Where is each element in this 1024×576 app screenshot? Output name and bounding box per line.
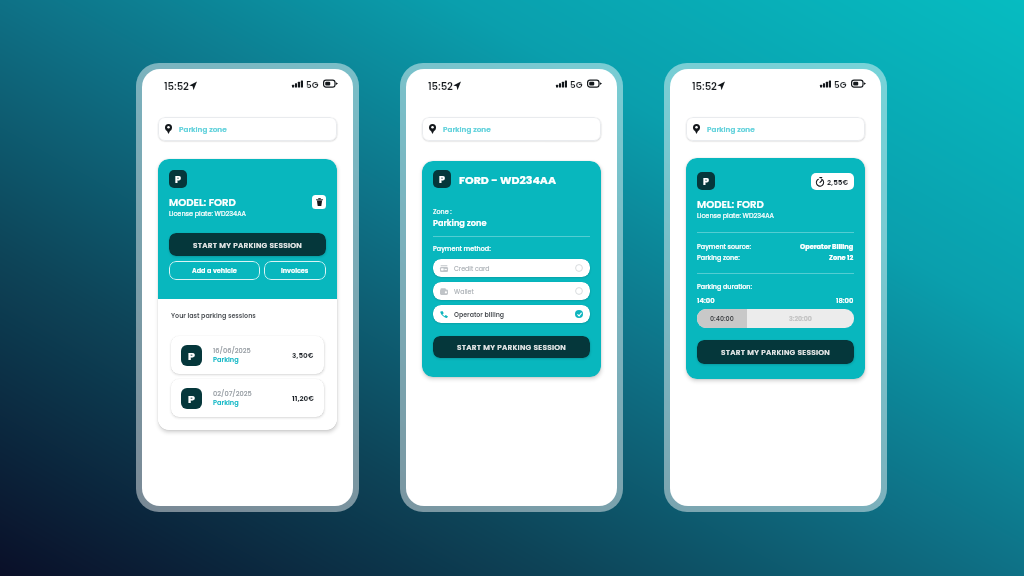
staticText: 14:00 [697,296,715,306]
button[interactable]: P [171,336,324,374]
staticText: Payment source: [697,242,752,251]
staticText: Zone : [433,207,452,216]
button[interactable]: START MY PARKING SESSION [169,233,326,256]
button[interactable]: Add a vehicle [169,261,260,280]
staticText: P [175,173,181,186]
staticText: 02/07/2025 [213,389,252,398]
staticText: 15:52 [692,79,717,93]
staticText: Parking zone: [697,253,740,262]
button[interactable]: Operator billing [433,305,590,323]
staticText: MODEL: FORD [697,197,764,211]
button[interactable]: Wallet [433,282,590,300]
button[interactable]: Parking zone [158,117,337,141]
staticText: 15:52 [428,79,453,93]
staticText: P [188,348,195,363]
staticText: Credit card [454,264,490,273]
button[interactable]: Invoices [264,261,326,280]
staticText: Add a vehicle [192,266,237,275]
staticText: Payment method: [433,244,491,253]
staticText: 18:00 [836,296,854,306]
staticText: P [703,175,709,188]
staticText: P [188,391,195,406]
staticText: 16/06/2025 [213,346,251,355]
staticText: Operator billing [454,310,505,319]
staticText: Operator Billing [800,242,854,251]
staticText: License plate: WD234AA [697,211,774,220]
staticText: Invoices [281,266,309,275]
staticText: 5G [834,79,847,91]
button[interactable]: Delete vehicle [312,195,326,209]
staticText: 3,50€ [292,350,314,360]
staticText: 3:20:00 [789,314,812,323]
staticText: 2,55€ [827,177,849,187]
staticText: 15:52 [164,79,189,93]
staticText: Parking zone [443,124,491,134]
staticText: MODEL: FORD [169,195,236,209]
staticText: 11,20€ [292,393,314,403]
button[interactable]: Parking zone [422,117,601,141]
button[interactable]: 2,55€ [811,173,854,190]
staticText: 5G [570,79,583,91]
staticText: Parking [213,398,239,407]
staticText: Your last parking sessions [171,311,256,320]
staticText: START MY PARKING SESSION [457,342,566,352]
button[interactable]: START MY PARKING SESSION [697,340,854,364]
staticText: Zone 12 [829,253,854,262]
staticText: FORD - WD234AA [459,172,557,187]
staticText: Parking zone [433,217,487,228]
staticText: 5G [306,79,319,91]
button[interactable]: Parking zone [686,117,865,141]
staticText: Parking duration: [697,282,753,291]
staticText: Parking [213,355,239,364]
button[interactable]: P [171,379,324,417]
staticText: Wallet [454,287,474,296]
staticText: Parking zone [707,124,755,134]
button[interactable]: 0:40:00 [697,309,854,328]
button[interactable]: START MY PARKING SESSION [433,336,590,358]
staticText: 0:40:00 [710,314,734,323]
staticText: P [439,173,445,186]
staticText: START MY PARKING SESSION [721,347,830,357]
staticText: License plate: WD234AA [169,209,246,218]
staticText: START MY PARKING SESSION [193,240,302,250]
button[interactable]: Credit card [433,259,590,277]
staticText: Parking zone [179,124,227,134]
